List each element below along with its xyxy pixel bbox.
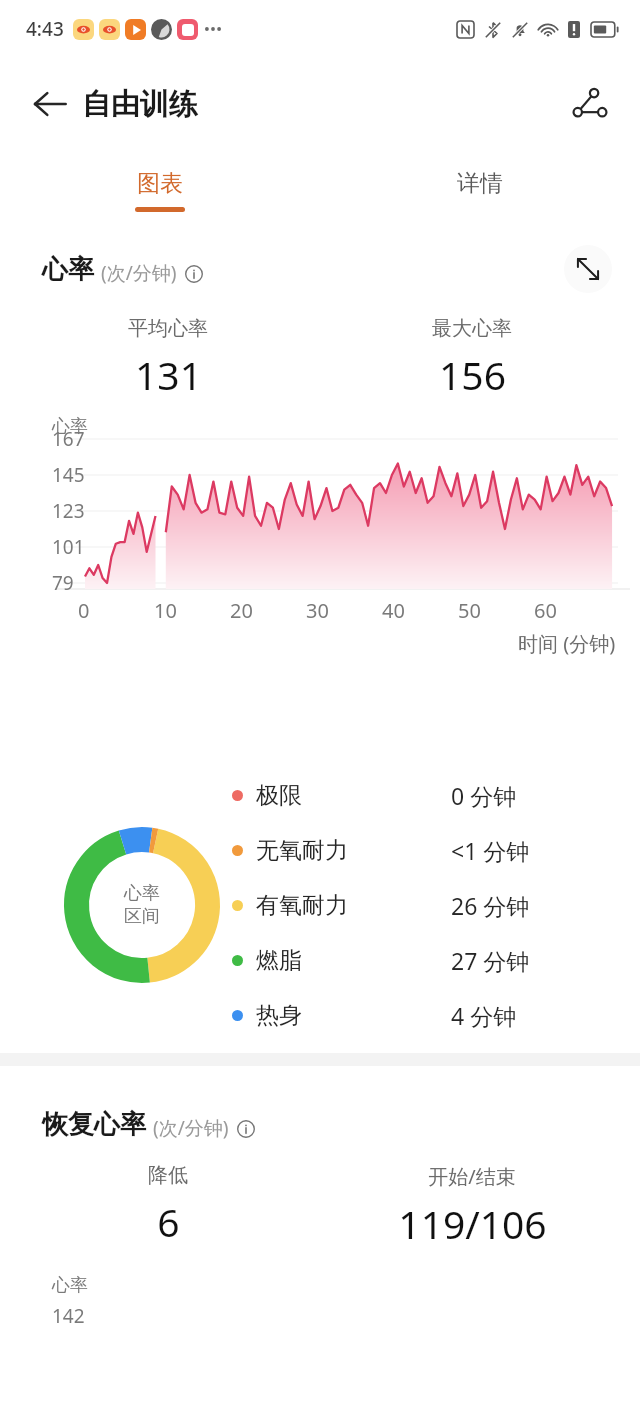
staticText: 40	[382, 597, 405, 624]
staticText: <1 分钟	[451, 835, 530, 866]
button[interactable]: 图表	[0, 150, 320, 230]
staticText: 6	[157, 1195, 180, 1248]
staticText: 79	[52, 570, 74, 596]
staticText: 50	[458, 597, 481, 624]
staticText: 心率	[42, 253, 94, 286]
button[interactable]: 详情	[320, 150, 640, 230]
button[interactable]: Back	[24, 78, 76, 130]
button[interactable]: 有氧耐力	[232, 890, 640, 921]
staticText: 142	[52, 1303, 85, 1329]
staticText: 156	[439, 348, 506, 401]
button[interactable]: 无氧耐力	[232, 835, 640, 866]
staticText: (次/分钟)	[101, 260, 177, 286]
staticText: 详情	[457, 169, 503, 198]
staticText: 心率	[52, 415, 88, 438]
staticText: 区间	[124, 905, 160, 928]
staticText: 心率	[124, 882, 160, 905]
staticText: 最大心率	[432, 316, 512, 341]
staticText: 30	[306, 597, 329, 624]
button[interactable]: 热身	[232, 1000, 640, 1031]
staticText: 10	[154, 597, 177, 624]
staticText: 0 分钟	[451, 780, 517, 811]
staticText: 无氧耐力	[256, 836, 348, 865]
button[interactable]: 极限	[232, 780, 640, 811]
staticText: 101	[52, 534, 85, 560]
staticText: 心率	[52, 1274, 88, 1297]
staticText: 燃脂	[256, 946, 302, 975]
staticText: 119/106	[398, 1197, 547, 1250]
staticText: 20	[230, 597, 253, 624]
staticText: 4 分钟	[451, 1000, 517, 1031]
staticText: 0	[78, 597, 90, 624]
staticText: 图表	[137, 169, 183, 198]
staticText: 145	[52, 462, 85, 488]
staticText: 131	[135, 348, 202, 401]
staticText: 自由训练	[82, 86, 198, 123]
staticText: 4:43	[26, 16, 64, 42]
staticText: 167	[52, 426, 85, 452]
staticText: 时间 (分钟)	[518, 630, 616, 657]
button[interactable]: Share	[564, 78, 616, 130]
staticText: 热身	[256, 1001, 302, 1030]
staticText: 极限	[256, 781, 302, 810]
staticText: 降低	[148, 1163, 188, 1188]
button[interactable]: Expand chart	[564, 245, 612, 293]
staticText: (次/分钟)	[153, 1115, 229, 1141]
staticText: 60	[534, 597, 557, 624]
staticText: 开始/结束	[428, 1163, 516, 1190]
staticText: 恢复心率	[42, 1108, 146, 1141]
staticText: 27 分钟	[451, 945, 530, 976]
staticText: 有氧耐力	[256, 891, 348, 920]
staticText: 26 分钟	[451, 890, 530, 921]
staticText: 123	[52, 498, 85, 524]
button[interactable]: 燃脂	[232, 945, 640, 976]
staticText: 平均心率	[128, 316, 208, 341]
